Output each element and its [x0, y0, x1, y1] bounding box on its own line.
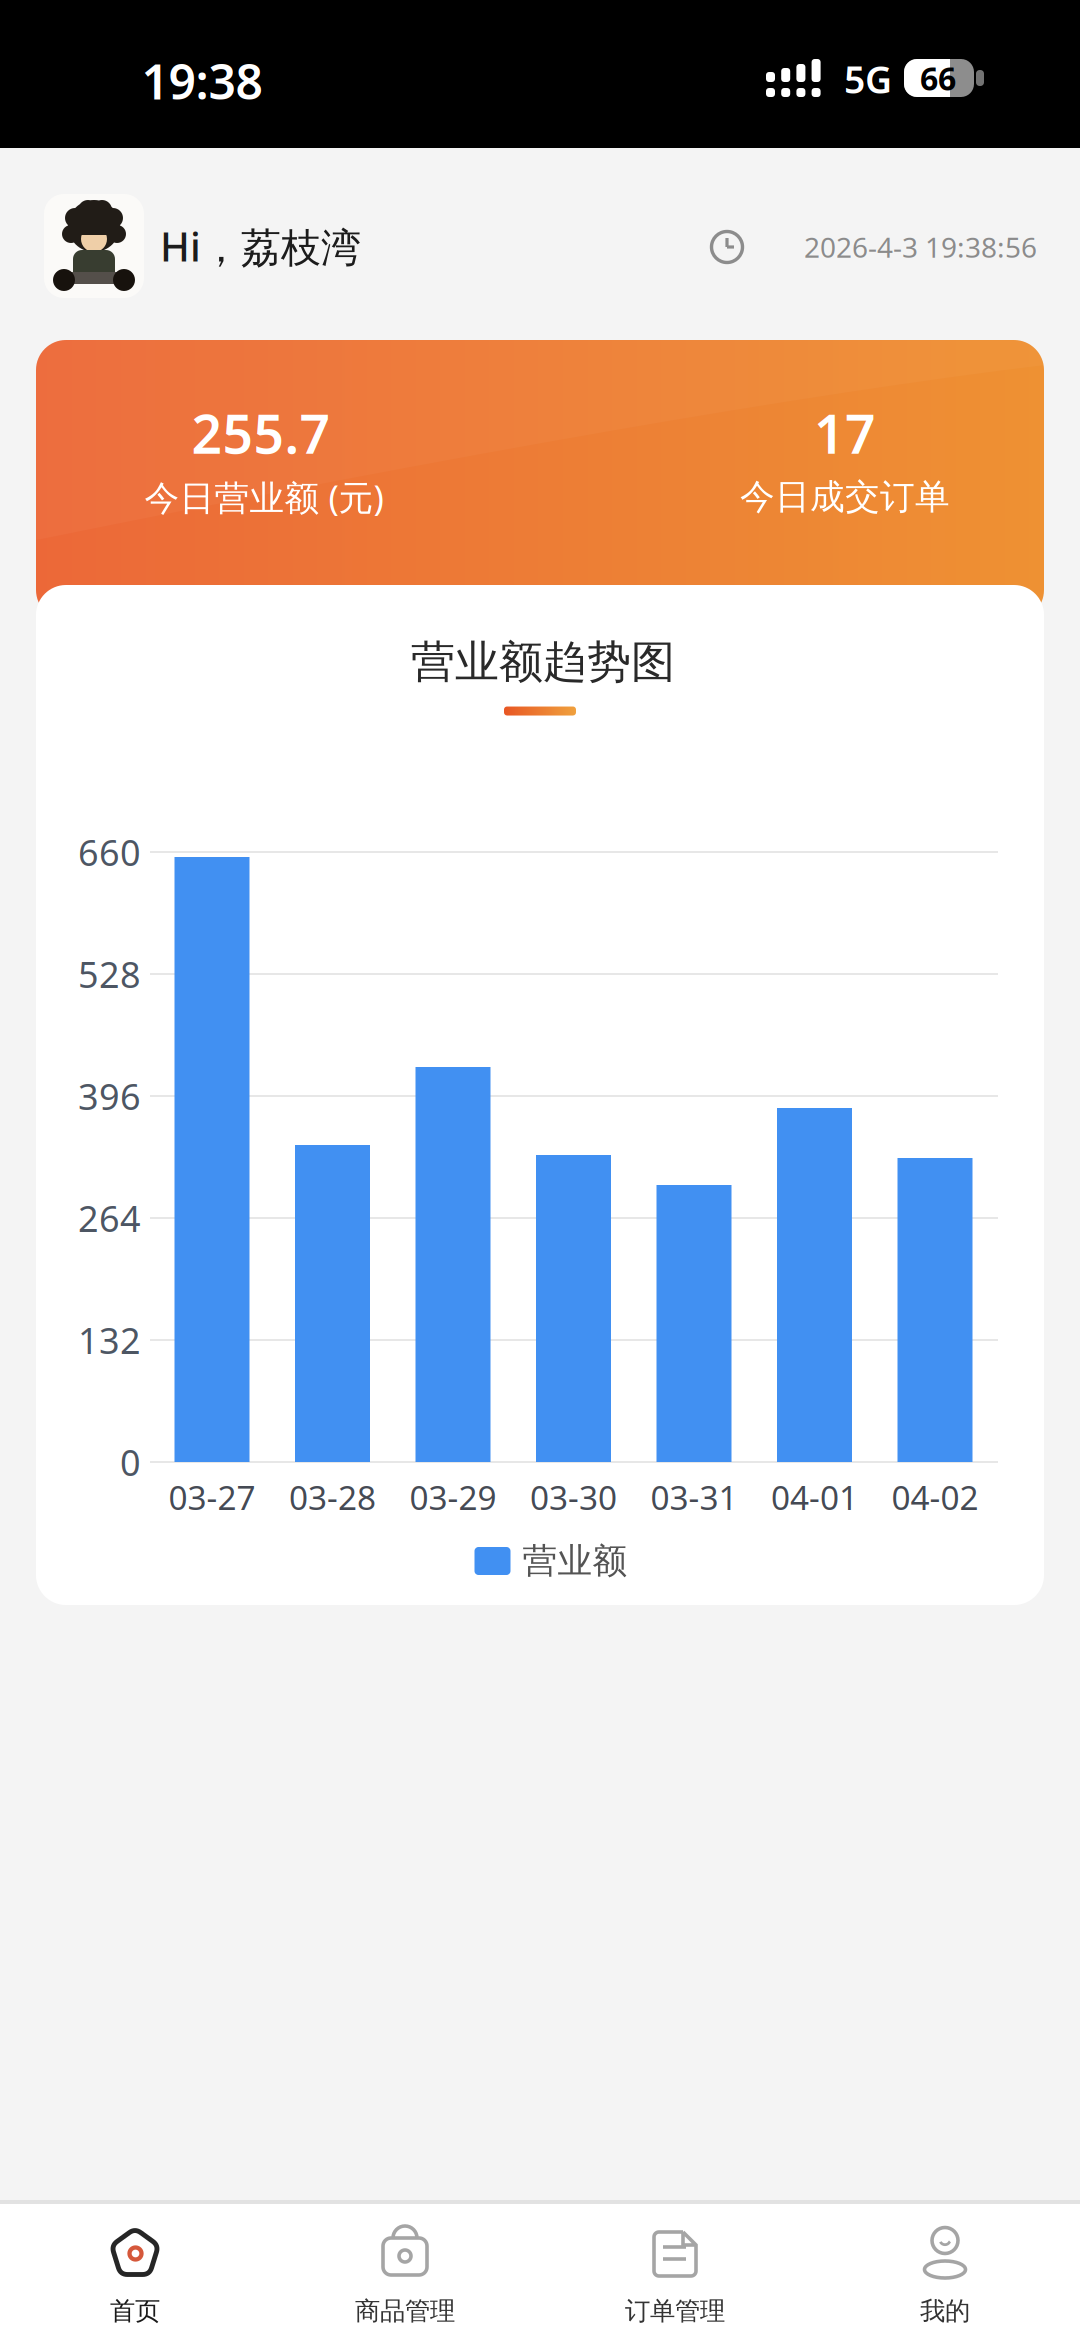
staticText: 660	[78, 828, 141, 876]
staticText: 订单管理	[625, 2295, 725, 2326]
staticText: 19:38	[141, 49, 262, 113]
staticText: 营业额趋势图	[411, 635, 675, 689]
staticText: 商品管理	[355, 2295, 455, 2326]
button[interactable]: 首页	[0, 2196, 270, 2346]
staticText: 396	[78, 1072, 141, 1120]
staticText: 17	[814, 398, 876, 468]
staticText: 03-29	[409, 1475, 496, 1519]
staticText: 04-02	[891, 1475, 978, 1519]
staticText: 03-30	[530, 1475, 617, 1519]
staticText: 2026-4-3 19:38:56	[804, 228, 1037, 266]
staticText: 528	[78, 950, 141, 998]
staticText: 首页	[110, 2295, 160, 2326]
button[interactable]: 商品管理	[270, 2196, 540, 2346]
staticText: 03-28	[289, 1475, 376, 1519]
staticText: Hi，荔枝湾	[160, 219, 361, 273]
staticText: 我的	[920, 2295, 970, 2326]
staticText: 04-01	[771, 1475, 858, 1519]
staticText: 03-31	[650, 1475, 737, 1519]
staticText: 03-27	[168, 1475, 255, 1519]
staticText: 5G	[844, 54, 892, 104]
button[interactable]: 订单管理	[540, 2196, 810, 2346]
staticText: 营业额	[522, 1540, 627, 1582]
staticText: 264	[78, 1194, 141, 1242]
staticText: 今日成交订单	[740, 476, 950, 518]
staticText: 今日营业额 (元)	[144, 474, 383, 520]
staticText: 255.7	[191, 398, 330, 468]
staticText: 0	[120, 1438, 141, 1486]
staticText: 132	[78, 1316, 141, 1364]
button[interactable]: 我的	[810, 2196, 1080, 2346]
staticText: 66	[920, 57, 956, 99]
